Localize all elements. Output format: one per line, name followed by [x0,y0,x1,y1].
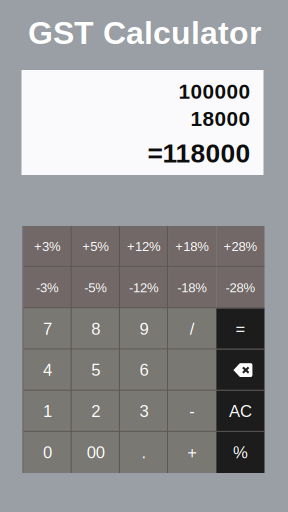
button[interactable]: 6 [120,349,168,391]
staticText: +12% [127,239,161,254]
staticText: 5 [91,361,100,379]
staticText: 6 [139,361,148,379]
button[interactable]: 8 [72,308,120,349]
button[interactable]: -3% [23,267,72,308]
staticText: +3% [34,239,61,254]
button[interactable]: -12% [120,267,168,308]
button[interactable]: +12% [120,226,168,267]
staticText: / [190,320,195,338]
button[interactable]: -5% [72,267,120,308]
staticText: 18000 [190,107,250,130]
button[interactable]: - [168,391,216,432]
button[interactable]: 4 [23,349,72,391]
staticText: 8 [91,320,100,338]
staticText: 3 [139,402,148,420]
button[interactable]: +28% [216,226,264,267]
staticText: + [187,443,197,462]
button[interactable]: . [120,432,168,473]
staticText: = [235,320,245,338]
staticText: -18% [177,280,207,295]
button[interactable]: = [216,308,264,349]
staticText: +18% [175,239,209,254]
staticText: 1 [43,402,52,420]
staticText: AC [229,402,252,420]
staticText: -28% [225,280,255,295]
staticText: GST Calculator [28,15,261,51]
staticText: 00 [87,443,105,462]
staticText: % [233,443,248,462]
button[interactable]: 5 [72,349,120,391]
staticText: . [141,443,146,462]
button[interactable]: +3% [23,226,72,267]
staticText: -5% [84,280,107,295]
button[interactable]: 9 [120,308,168,349]
staticText: 4 [43,361,52,379]
button[interactable]: -18% [168,267,216,308]
button[interactable] [216,349,264,391]
staticText: +28% [223,239,257,254]
button[interactable]: 0 [23,432,72,473]
staticText: - [189,402,195,420]
button[interactable]: / [168,308,216,349]
button[interactable]: -28% [216,267,264,308]
staticText: +5% [82,239,109,254]
button[interactable]: 1 [23,391,72,432]
staticText: 2 [91,402,100,420]
staticText: 100000 [178,80,250,103]
button[interactable] [168,349,216,391]
button[interactable]: % [216,432,264,473]
button[interactable]: +18% [168,226,216,267]
button[interactable]: + [168,432,216,473]
button[interactable]: +5% [72,226,120,267]
button[interactable]: 3 [120,391,168,432]
staticText: 9 [139,320,148,338]
staticText: =118000 [147,138,250,168]
button[interactable]: AC [216,391,264,432]
staticText: -3% [36,280,59,295]
button[interactable]: 2 [72,391,120,432]
button[interactable]: 00 [72,432,120,473]
button[interactable]: 7 [23,308,72,349]
staticText: 0 [43,443,52,462]
staticText: -12% [129,280,159,295]
staticText: 7 [43,320,52,338]
